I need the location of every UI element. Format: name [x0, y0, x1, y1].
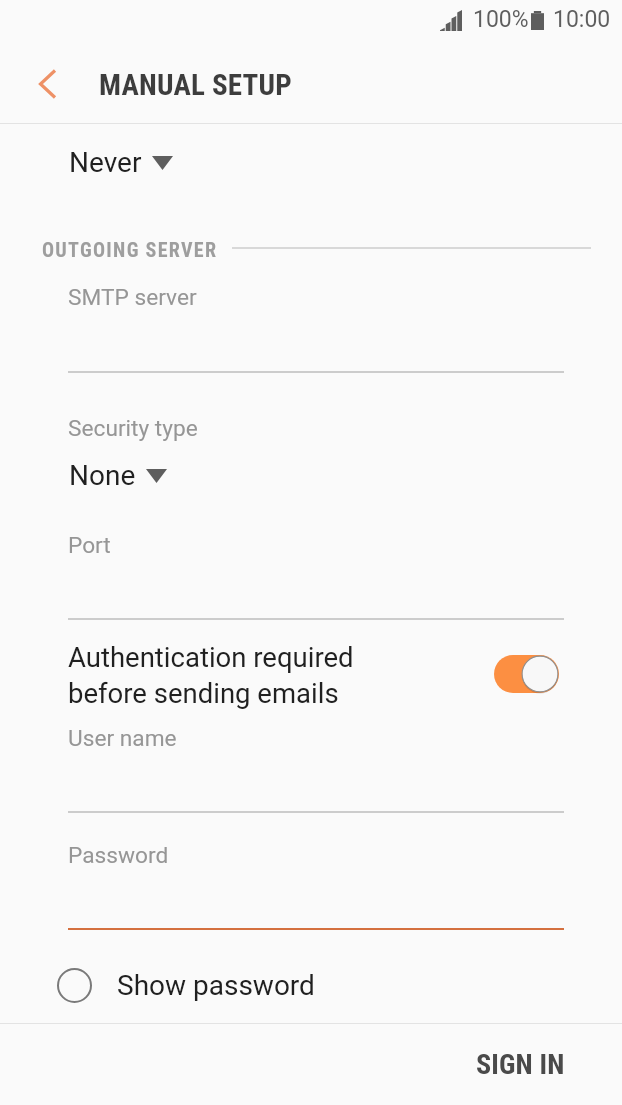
button[interactable]: Port: [68, 524, 564, 624]
staticText: Port: [68, 532, 111, 559]
staticText: SMTP server: [68, 284, 197, 311]
button[interactable]: Authentication required switch: [494, 655, 559, 693]
button[interactable]: Password: [68, 834, 564, 934]
button[interactable]: None: [60, 452, 190, 498]
button[interactable]: Show password: [57, 958, 315, 1013]
staticText: Password: [68, 842, 169, 869]
staticText: Authentication required before sending e…: [68, 641, 448, 709]
staticText: SIGN IN: [476, 1048, 565, 1081]
button[interactable]: User name: [68, 717, 564, 817]
staticText: MANUAL SETUP: [99, 68, 292, 102]
staticText: Show password: [117, 969, 315, 1002]
staticText: 10:00: [553, 6, 611, 33]
staticText: User name: [68, 725, 177, 752]
button[interactable]: SMTP server: [68, 276, 564, 377]
staticText: None: [69, 459, 136, 492]
staticText: Security type: [68, 415, 198, 442]
button[interactable]: Navigate up: [20, 62, 74, 108]
staticText: OUTGOING SERVER: [42, 238, 218, 261]
staticText: 100%: [473, 6, 529, 33]
button[interactable]: SIGN IN: [444, 1032, 622, 1097]
button[interactable]: Never: [60, 139, 190, 185]
staticText: Never: [69, 146, 142, 179]
